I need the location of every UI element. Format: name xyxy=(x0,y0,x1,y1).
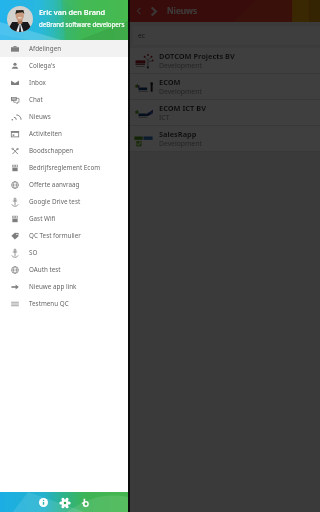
staticText: Bedrijfsreglement Ecom xyxy=(29,163,101,172)
button[interactable]: QC Test formulier xyxy=(0,227,128,244)
button[interactable]: Collega's xyxy=(0,57,128,74)
button[interactable]: Boodschappen xyxy=(0,142,128,159)
button[interactable]: Testmenu QC xyxy=(0,295,128,312)
button[interactable]: SO xyxy=(0,244,128,261)
button[interactable]: Google Drive test xyxy=(0,193,128,210)
button[interactable]: DOTCOM Projects BV xyxy=(128,48,320,73)
staticText: Nieuws xyxy=(167,5,198,17)
button[interactable]: Chat xyxy=(0,91,128,108)
button[interactable]: Profile photo xyxy=(7,6,33,32)
button[interactable]: SalesRapp xyxy=(128,126,320,151)
button[interactable]: Back xyxy=(132,4,146,18)
staticText: ec xyxy=(138,31,146,40)
button[interactable]: Settings xyxy=(56,494,73,511)
staticText: ECOM ICT BV xyxy=(159,103,206,113)
button[interactable]: ECOM xyxy=(128,74,320,99)
staticText: Testmenu QC xyxy=(29,299,69,308)
staticText: Development xyxy=(159,61,202,70)
staticText: OAuth test xyxy=(29,265,61,274)
button[interactable]: Info xyxy=(35,494,52,511)
staticText: SalesRapp xyxy=(159,129,197,139)
button[interactable]: Bedrijfsreglement Ecom xyxy=(0,159,128,176)
staticText: Development xyxy=(159,87,202,96)
staticText: ICT xyxy=(159,113,170,122)
staticText: Eric van den Brand xyxy=(39,7,106,17)
staticText: deBrand software developers xyxy=(39,20,125,28)
button[interactable]: Inbox xyxy=(0,74,128,91)
button[interactable]: Nieuwe app link xyxy=(0,278,128,295)
staticText: Boodschappen xyxy=(29,146,74,155)
button[interactable]: Activiteiten xyxy=(0,125,128,142)
button[interactable]: Forward xyxy=(146,4,160,18)
staticText: Google Drive test xyxy=(29,197,81,206)
staticText: ECOM xyxy=(159,77,181,87)
staticText: Chat xyxy=(29,95,43,104)
staticText: Gast Wifi xyxy=(29,214,56,223)
staticText: Offerte aanvraag xyxy=(29,180,80,189)
staticText: SO xyxy=(29,248,38,257)
staticText: Afdelingen xyxy=(29,44,62,53)
staticText: DOTCOM Projects BV xyxy=(159,51,235,61)
button[interactable]: Afdelingen xyxy=(0,40,128,57)
staticText: QC Test formulier xyxy=(29,231,81,240)
button[interactable]: ECOM ICT BV xyxy=(128,100,320,125)
button[interactable]: Gast Wifi xyxy=(0,210,128,227)
button[interactable]: OAuth test xyxy=(0,261,128,278)
button[interactable]: deBrand xyxy=(77,494,94,511)
staticText: Development xyxy=(159,139,202,148)
staticText: Activiteiten xyxy=(29,129,62,138)
button[interactable]: Offerte aanvraag xyxy=(0,176,128,193)
button[interactable]: Nieuws xyxy=(0,108,128,125)
staticText: Nieuwe app link xyxy=(29,282,77,291)
staticText: Collega's xyxy=(29,61,56,70)
staticText: Inbox xyxy=(29,78,46,87)
staticText: Nieuws xyxy=(29,112,51,121)
